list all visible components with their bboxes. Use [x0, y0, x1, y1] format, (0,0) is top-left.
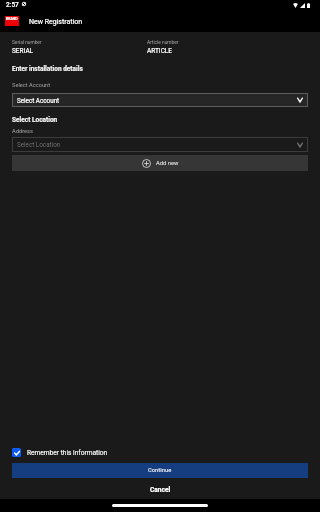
staticText: BRAND — [6, 17, 18, 21]
staticText: ARTICLE — [147, 47, 173, 55]
staticText: Cancel — [150, 486, 171, 494]
staticText: 2:57 — [6, 1, 19, 9]
staticText: Select Account — [17, 97, 60, 104]
other: Brand logo — [5, 16, 19, 26]
button[interactable]: Add new — [12, 155, 308, 171]
staticText: Add new — [156, 160, 179, 167]
staticText: Continue — [148, 467, 172, 474]
staticText: Article number — [147, 40, 179, 46]
button[interactable]: Remember this information — [12, 446, 108, 459]
staticText: Select Location — [12, 116, 58, 124]
button[interactable]: Select Location — [12, 137, 308, 152]
staticText: Remember this information — [27, 449, 108, 457]
button[interactable]: Cancel — [12, 481, 308, 498]
button[interactable]: Select Account — [12, 93, 308, 107]
staticText: Serial number — [12, 40, 42, 46]
staticText: New Registration — [29, 18, 83, 26]
button[interactable]: Continue — [12, 463, 308, 478]
staticText: SERIAL — [12, 47, 34, 55]
staticText: Select Account — [12, 82, 51, 89]
staticText: Address — [12, 128, 33, 135]
staticText: Select Location — [17, 141, 61, 148]
staticText: Enter installation details — [12, 65, 83, 73]
